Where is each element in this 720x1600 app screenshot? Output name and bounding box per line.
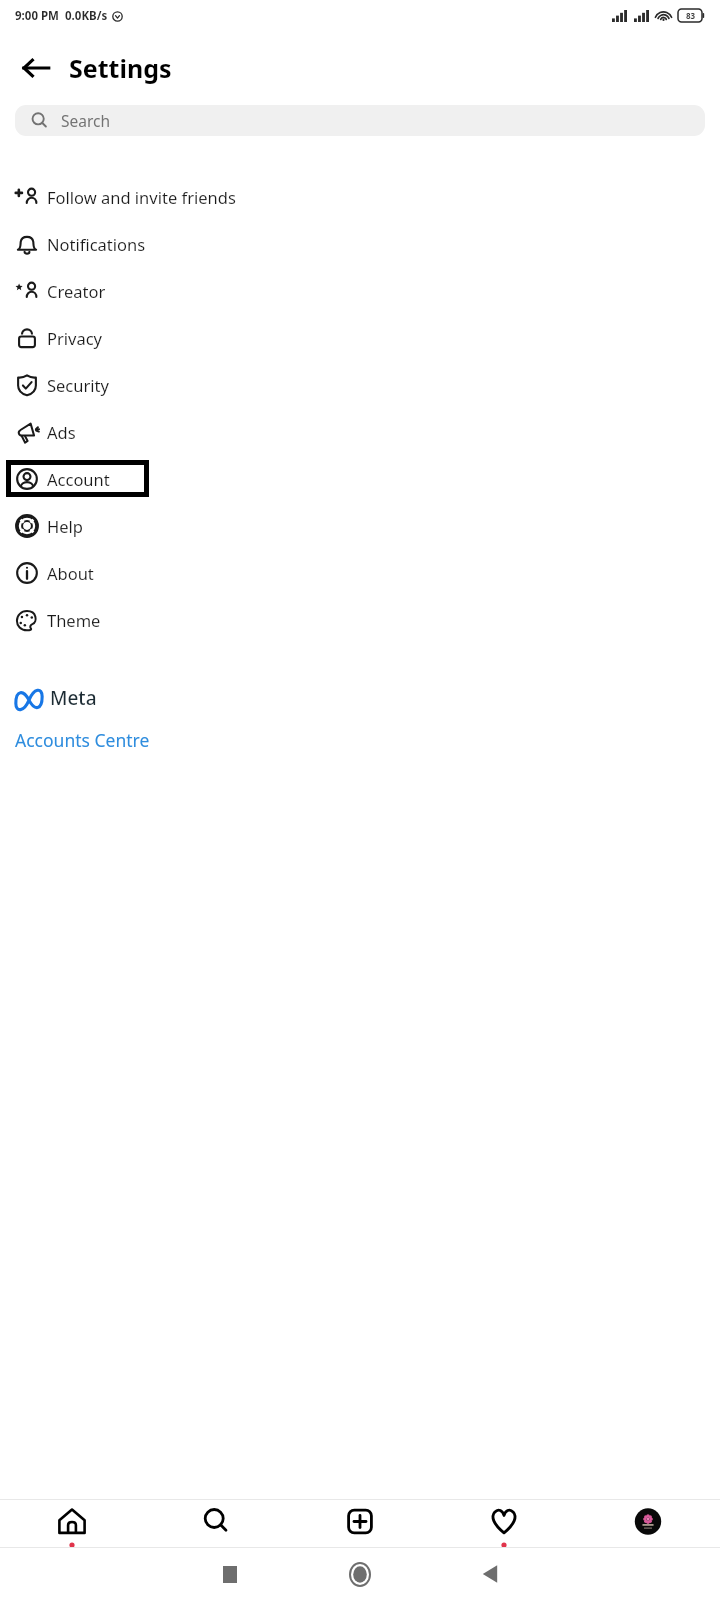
button[interactable]: Notifications <box>0 220 720 267</box>
button[interactable]: Follow and invite friends <box>0 173 720 220</box>
staticText: 83 <box>686 10 696 21</box>
staticText: Theme <box>47 609 101 631</box>
button[interactable]: Home <box>0 1500 144 1547</box>
button[interactable] <box>11 465 144 492</box>
button[interactable]: Back <box>8 40 64 96</box>
button[interactable]: Help <box>0 502 720 549</box>
staticText: Help <box>47 515 83 537</box>
staticText: Ads <box>47 421 76 443</box>
staticText: 9:00 PM <box>15 8 59 24</box>
staticText: Account <box>47 468 110 490</box>
button[interactable]: Activity <box>432 1500 576 1547</box>
staticText: Creator <box>47 280 106 302</box>
button[interactable]: Theme <box>0 596 720 643</box>
button[interactable]: Search <box>15 105 705 136</box>
button[interactable]: Meta <box>15 685 97 711</box>
button[interactable]: Recents <box>165 1548 295 1600</box>
button[interactable]: Privacy <box>0 314 720 361</box>
staticText: Follow and invite friends <box>47 186 236 208</box>
button[interactable]: Security <box>0 361 720 408</box>
button[interactable]: Back <box>425 1548 555 1600</box>
button[interactable]: About <box>0 549 720 596</box>
staticText: Search <box>61 110 111 131</box>
button[interactable]: Home <box>295 1548 425 1600</box>
staticText: Security <box>47 374 109 396</box>
staticText: About <box>47 562 94 584</box>
button[interactable]: Profile <box>576 1500 720 1547</box>
staticText: Settings <box>69 51 172 85</box>
staticText: Privacy <box>47 327 103 349</box>
staticText: Meta <box>50 685 97 711</box>
button[interactable]: Search <box>144 1500 288 1547</box>
button[interactable]: Ads <box>0 408 720 455</box>
button[interactable]: Create <box>288 1500 432 1547</box>
staticText: Notifications <box>47 233 146 255</box>
staticText: 0.0KB/s <box>65 8 108 24</box>
button[interactable]: Creator <box>0 267 720 314</box>
button[interactable]: Accounts Centre <box>15 728 150 752</box>
